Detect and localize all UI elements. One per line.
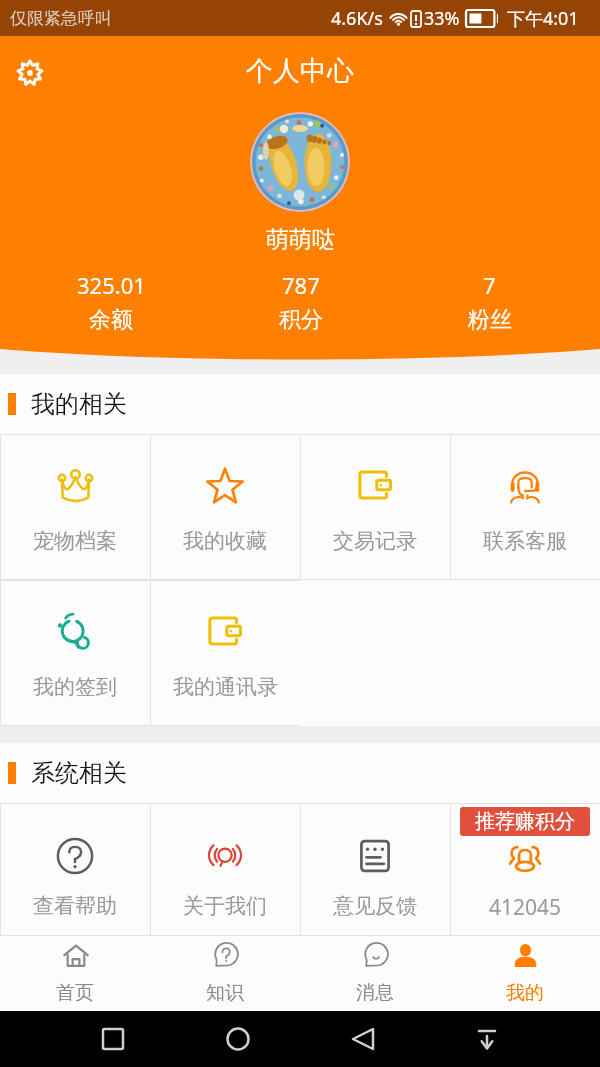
staticText: 我的相关 xyxy=(31,389,127,419)
staticText: 325.01 xyxy=(77,270,146,300)
button[interactable]: 意见反馈 xyxy=(300,803,450,936)
staticText: 关于我们 xyxy=(183,893,267,919)
staticText: 交易记录 xyxy=(333,528,417,554)
button[interactable]: 我的签到 xyxy=(0,580,150,726)
button[interactable]: 查看帮助 xyxy=(0,803,150,936)
staticText: 联系客服 xyxy=(483,528,567,554)
staticText: 33% xyxy=(424,6,460,31)
staticText: 余额 xyxy=(89,306,133,334)
staticText: 积分 xyxy=(279,306,323,334)
button[interactable]: 交易记录 xyxy=(300,434,450,580)
button[interactable]: 宠物档案 xyxy=(0,434,150,580)
staticText: 下午4:01 xyxy=(507,6,579,31)
staticText: 粉丝 xyxy=(468,306,512,334)
button[interactable]: 联系客服 xyxy=(450,434,600,580)
button[interactable]: 关于我们 xyxy=(150,803,300,936)
button[interactable]: 知识 xyxy=(150,936,300,1011)
staticText: 7 xyxy=(483,270,496,300)
staticText: 我的 xyxy=(506,981,544,1005)
staticText: 首页 xyxy=(56,981,94,1005)
staticText: 412045 xyxy=(489,893,562,922)
staticText: 仅限紧急呼叫 xyxy=(10,8,112,29)
staticText: 我的收藏 xyxy=(183,528,267,554)
button[interactable]: Avatar xyxy=(250,112,350,212)
staticText: 宠物档案 xyxy=(33,528,117,554)
button[interactable]: 首页 xyxy=(0,936,150,1011)
staticText: 意见反馈 xyxy=(333,893,417,919)
button[interactable]: 我的通讯录 xyxy=(150,580,300,726)
button[interactable]: 325.01 xyxy=(16,270,206,334)
staticText: 萌萌哒 xyxy=(266,225,335,254)
button[interactable]: 我的收藏 xyxy=(150,434,300,580)
staticText: 个人中心 xyxy=(246,54,354,88)
staticText: 我的签到 xyxy=(33,674,117,700)
staticText: 787 xyxy=(282,270,320,300)
button[interactable]: 我的 xyxy=(450,936,600,1011)
button[interactable]: Settings xyxy=(11,54,49,92)
button[interactable]: 412045 xyxy=(450,803,600,936)
staticText: 知识 xyxy=(206,981,244,1005)
button[interactable]: 消息 xyxy=(300,936,450,1011)
button[interactable]: 787 xyxy=(206,270,395,334)
staticText: 我的通讯录 xyxy=(173,674,278,700)
staticText: 消息 xyxy=(356,981,394,1005)
staticText: 系统相关 xyxy=(31,758,127,788)
button[interactable]: 7 xyxy=(395,270,584,334)
staticText: 推荐赚积分 xyxy=(475,809,575,834)
staticText: 4.6K/s xyxy=(331,6,383,31)
staticText: 查看帮助 xyxy=(33,893,117,919)
